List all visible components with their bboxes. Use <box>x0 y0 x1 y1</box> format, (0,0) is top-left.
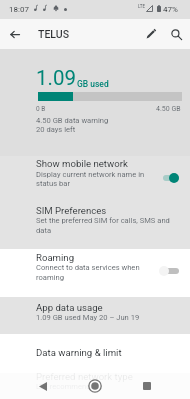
button[interactable]: Show mobile network <box>0 156 190 203</box>
staticText: Data warning & limit <box>36 347 122 358</box>
staticText: SIM Preferences <box>36 205 107 216</box>
staticText: Show mobile network <box>36 158 128 169</box>
button[interactable]: Back <box>34 377 52 395</box>
staticText: 18:07 <box>9 5 29 14</box>
staticText: 1.09 <box>36 66 76 90</box>
button[interactable]: Preferred network type <box>0 370 190 399</box>
staticText: status bar <box>36 179 70 188</box>
button[interactable]: Search <box>166 24 186 44</box>
button[interactable]: Data warning & limit <box>0 334 190 373</box>
staticText: GB used <box>77 79 109 89</box>
staticText: 47% <box>163 5 178 14</box>
button[interactable]: Recents <box>138 377 156 395</box>
staticText: data <box>36 226 52 235</box>
staticText: Set the preferred SIM for calls, SMS and <box>36 216 170 225</box>
staticText: 4.50 GB data warning <box>36 116 109 125</box>
staticText: Display current network name in <box>36 170 145 179</box>
staticText: 4.50 GB <box>156 105 181 113</box>
staticText: 0 B <box>36 105 46 113</box>
staticText: 20 days left <box>36 125 76 134</box>
staticText: TELUS <box>38 28 70 40</box>
button[interactable]: App data usage <box>0 297 190 334</box>
staticText: App data usage <box>36 302 103 313</box>
button[interactable]: Back <box>5 24 25 44</box>
staticText: roaming <box>36 273 64 282</box>
button[interactable]: Edit <box>141 24 161 44</box>
button[interactable]: Roaming <box>0 249 190 297</box>
staticText: LTE recommended <box>36 382 99 391</box>
staticText: Connect to data services when <box>36 263 140 272</box>
staticText: LTE <box>138 4 146 9</box>
staticText: Roaming <box>36 252 75 263</box>
button[interactable]: Home <box>86 377 104 395</box>
staticText: 1.09 GB used May 20 – Jun 19 <box>36 313 140 322</box>
staticText: Preferred network type <box>36 371 133 382</box>
button[interactable]: SIM Preferences <box>0 203 190 249</box>
